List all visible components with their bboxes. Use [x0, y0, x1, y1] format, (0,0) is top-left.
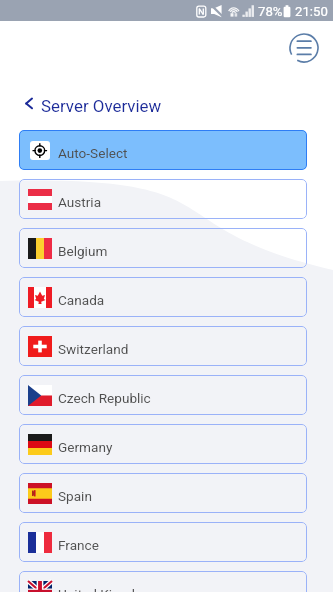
staticText: Spain — [58, 488, 92, 504]
staticText: 21:50 — [295, 4, 328, 19]
button[interactable]: France — [19, 522, 307, 562]
button[interactable]: Server Overview — [20, 88, 180, 120]
button[interactable]: Spain — [19, 473, 307, 513]
staticText: Switzerland — [58, 341, 129, 357]
staticText: Austria — [58, 194, 102, 210]
button[interactable]: Austria — [19, 179, 307, 219]
button[interactable]: Belgium — [19, 228, 307, 268]
staticText: Auto-Select — [58, 145, 128, 161]
button[interactable]: Canada — [19, 277, 307, 317]
button[interactable]: United Kingdom — [19, 571, 307, 592]
staticText: Czech Republic — [58, 390, 151, 406]
staticText: Belgium — [58, 243, 108, 259]
staticText: Server Overview — [41, 96, 162, 116]
staticText: 78% — [258, 4, 283, 19]
button[interactable]: Auto-Select — [19, 130, 307, 170]
button[interactable]: Menu — [289, 33, 319, 63]
staticText: Germany — [58, 439, 113, 455]
button[interactable]: Germany — [19, 424, 307, 464]
staticText: France — [58, 537, 99, 553]
button[interactable]: Czech Republic — [19, 375, 307, 415]
staticText: Canada — [58, 292, 105, 308]
button[interactable]: Switzerland — [19, 326, 307, 366]
staticText: United Kingdom — [58, 586, 155, 592]
